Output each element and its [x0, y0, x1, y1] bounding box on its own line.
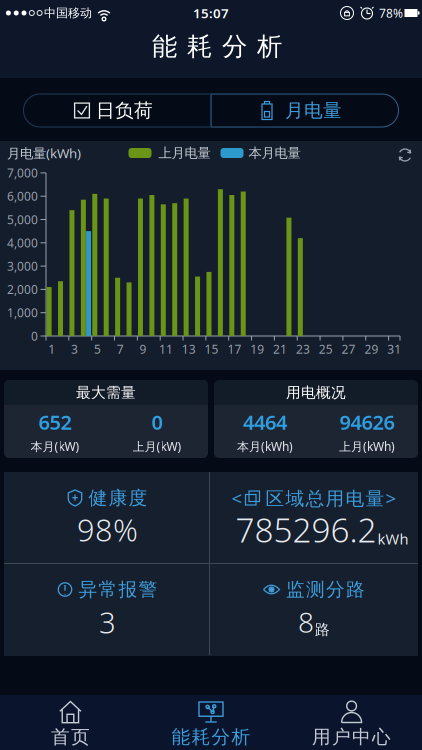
button[interactable]: 用户中心	[281, 695, 422, 750]
button[interactable]: 刷新	[398, 148, 412, 162]
staticText: 上月(kW)	[132, 438, 181, 454]
staticText: 27	[342, 341, 356, 357]
staticText: 4464	[243, 409, 287, 435]
staticText: 能耗分析	[171, 725, 250, 748]
staticText: 上月(kWh)	[339, 438, 395, 454]
staticText: 监测分路	[286, 578, 365, 601]
staticText: 21	[273, 341, 287, 357]
staticText: 94626	[339, 409, 394, 435]
staticText: 本月电量	[248, 145, 300, 161]
staticText: 15	[205, 341, 219, 357]
staticText: 78%	[379, 5, 403, 21]
staticText: 785296.2	[235, 507, 376, 552]
staticText: 8	[298, 603, 314, 641]
staticText: 7	[117, 341, 124, 357]
staticText: 7,000	[7, 165, 38, 181]
staticText: 异常报警	[78, 578, 157, 601]
staticText: kWh	[377, 529, 408, 549]
staticText: <	[231, 486, 242, 510]
staticText: 本月(kWh)	[237, 438, 293, 454]
staticText: 0	[151, 409, 162, 435]
staticText: 6,000	[7, 188, 38, 204]
staticText: 2,000	[7, 281, 38, 297]
staticText: 5	[94, 341, 101, 357]
staticText: 23	[296, 341, 310, 357]
button[interactable]: 首页	[0, 695, 141, 750]
staticText: 能耗分析	[152, 31, 282, 62]
staticText: 3	[71, 341, 78, 357]
staticText: 区域总用电量>	[265, 486, 396, 510]
staticText: 4,000	[7, 235, 38, 251]
staticText: 652	[38, 409, 71, 435]
staticText: 用户中心	[312, 725, 391, 748]
staticText: 17	[227, 341, 241, 357]
staticText: 上月电量	[158, 145, 210, 161]
staticText: 最大需量	[76, 383, 136, 401]
staticText: 31	[387, 341, 401, 357]
staticText: 3	[99, 602, 116, 641]
staticText: 13	[182, 341, 196, 357]
staticText: 19	[250, 341, 264, 357]
staticText: 15:07	[193, 4, 229, 22]
staticText: 29	[364, 341, 378, 357]
staticText: 11	[159, 341, 173, 357]
staticText: 1,000	[7, 305, 38, 321]
staticText: 25	[319, 341, 333, 357]
staticText: 0	[31, 328, 38, 344]
staticText: 3,000	[7, 258, 38, 274]
staticText: 路	[315, 621, 330, 639]
staticText: 98%	[77, 509, 138, 550]
staticText: 本月(kW)	[30, 438, 79, 454]
staticText: 首页	[51, 725, 90, 748]
staticText: 日负荷	[96, 99, 153, 122]
button[interactable]: 日负荷	[23, 94, 211, 127]
staticText: 5,000	[7, 211, 38, 227]
staticText: 中国移动	[44, 6, 92, 20]
staticText: 月电量	[285, 99, 342, 122]
button[interactable]: 能耗分析	[141, 695, 281, 750]
button[interactable]: <	[231, 486, 396, 510]
staticText: 健康度	[88, 486, 147, 509]
staticText: 月电量(kWh)	[7, 144, 81, 162]
button[interactable]: 月电量	[211, 94, 398, 127]
staticText: 9	[140, 341, 147, 357]
staticText: 1	[48, 341, 55, 357]
staticText: 用电概况	[286, 383, 346, 401]
